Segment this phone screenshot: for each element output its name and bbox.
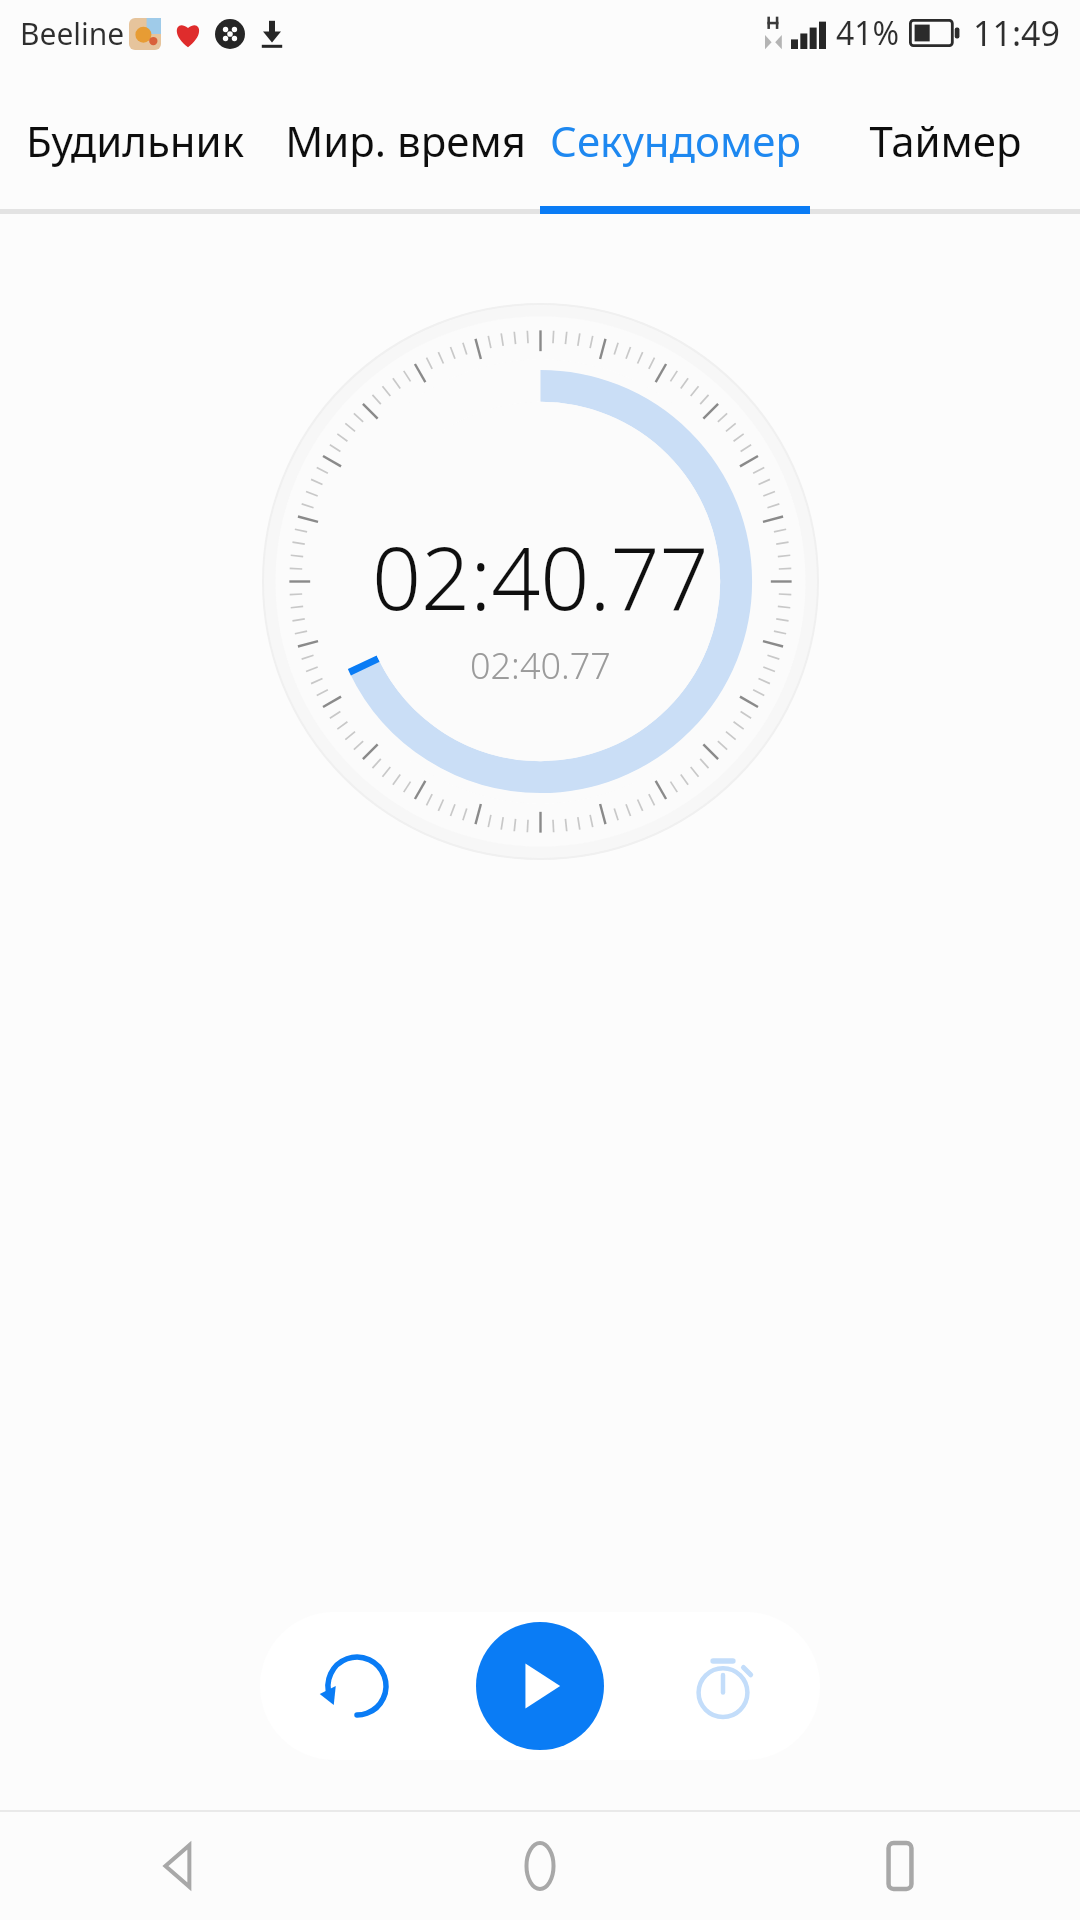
button[interactable]: Таймер — [810, 66, 1080, 214]
staticText: Секундомер — [550, 112, 801, 169]
staticText: 02:40.77 — [372, 518, 709, 635]
button[interactable]: Reset — [282, 1612, 432, 1760]
button[interactable]: Будильник — [0, 66, 270, 214]
button[interactable]: Back — [0, 1812, 360, 1920]
staticText: 02:40.77 — [470, 641, 611, 690]
staticText: 41% — [836, 11, 900, 55]
button[interactable]: Start — [476, 1622, 604, 1750]
button[interactable]: Recents — [720, 1812, 1080, 1920]
button[interactable]: Мир. время — [270, 66, 540, 214]
staticText: Таймер — [869, 112, 1022, 169]
button[interactable]: Home — [360, 1812, 720, 1920]
staticText: Будильник — [26, 112, 244, 169]
staticText: Beeline — [20, 13, 125, 54]
staticText: Мир. время — [285, 112, 526, 169]
button[interactable]: Lap — [648, 1612, 798, 1760]
staticText: 11:49 — [973, 10, 1060, 56]
button[interactable]: Секундомер — [540, 66, 810, 214]
